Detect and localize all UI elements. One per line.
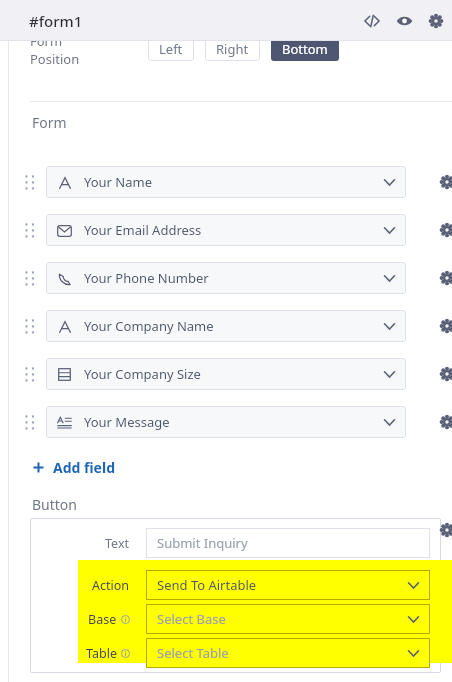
staticText: Send To Airtable [157,576,257,594]
staticText: Action [92,577,130,594]
button[interactable]: Bottom [271,36,339,61]
button[interactable]: View code [358,7,386,35]
button[interactable]: Submit Inquiry [146,528,430,558]
button[interactable]: Send To Airtable [146,570,430,600]
button[interactable]: Select Table [146,638,430,668]
staticText: Left [159,40,183,58]
button[interactable]: Field settings [439,174,452,190]
button[interactable]: Reorder Your Name [22,174,38,190]
button[interactable]: Your Phone Number [46,262,406,294]
button[interactable]: Preview [390,7,418,35]
button[interactable]: Field settings [439,270,452,286]
staticText: Your Message [84,413,170,431]
button[interactable]: Your Message [46,406,406,438]
staticText: Form [30,32,63,50]
button[interactable]: Your Company Name [46,310,406,342]
button[interactable]: Field settings [439,318,452,334]
button[interactable]: Settings [422,7,450,35]
button[interactable]: Add field [30,455,117,480]
button[interactable]: Left [148,36,194,61]
button[interactable]: Your Email Address [46,214,406,246]
staticText: Text [105,535,130,552]
staticText: Select Base [157,610,226,628]
button[interactable]: Your Company Size [46,358,406,390]
staticText: Your Name [84,173,153,191]
button[interactable]: Button settings [439,522,452,538]
staticText: Form [32,113,67,132]
staticText: #form1 [29,11,83,31]
staticText: Right [216,40,249,58]
button[interactable]: Field settings [439,366,452,382]
staticText: Your Company Size [84,365,201,383]
button[interactable]: Reorder Your Company Size [22,366,38,382]
staticText: Your Phone Number [84,269,209,287]
staticText: Select Table [157,644,229,662]
button[interactable]: Field settings [439,222,452,238]
staticText: Position [30,50,80,68]
button[interactable]: Reorder Your Email Address [22,222,38,238]
staticText: Your Email Address [84,221,202,239]
staticText: Base [88,611,117,628]
staticText: Submit Inquiry [157,534,248,552]
button[interactable]: Reorder Your Message [22,414,38,430]
button[interactable]: Right [205,36,260,61]
staticText: Your Company Name [84,317,214,335]
staticText: Button [32,495,77,514]
button[interactable]: Reorder Your Company Name [22,318,38,334]
button[interactable]: Your Name [46,166,406,198]
button[interactable]: Select Base [146,604,430,634]
button[interactable]: Reorder Your Phone Number [22,270,38,286]
staticText: Add field [53,458,115,477]
button[interactable]: Field settings [439,414,452,430]
staticText: Table [86,645,117,662]
staticText: Bottom [282,40,328,58]
